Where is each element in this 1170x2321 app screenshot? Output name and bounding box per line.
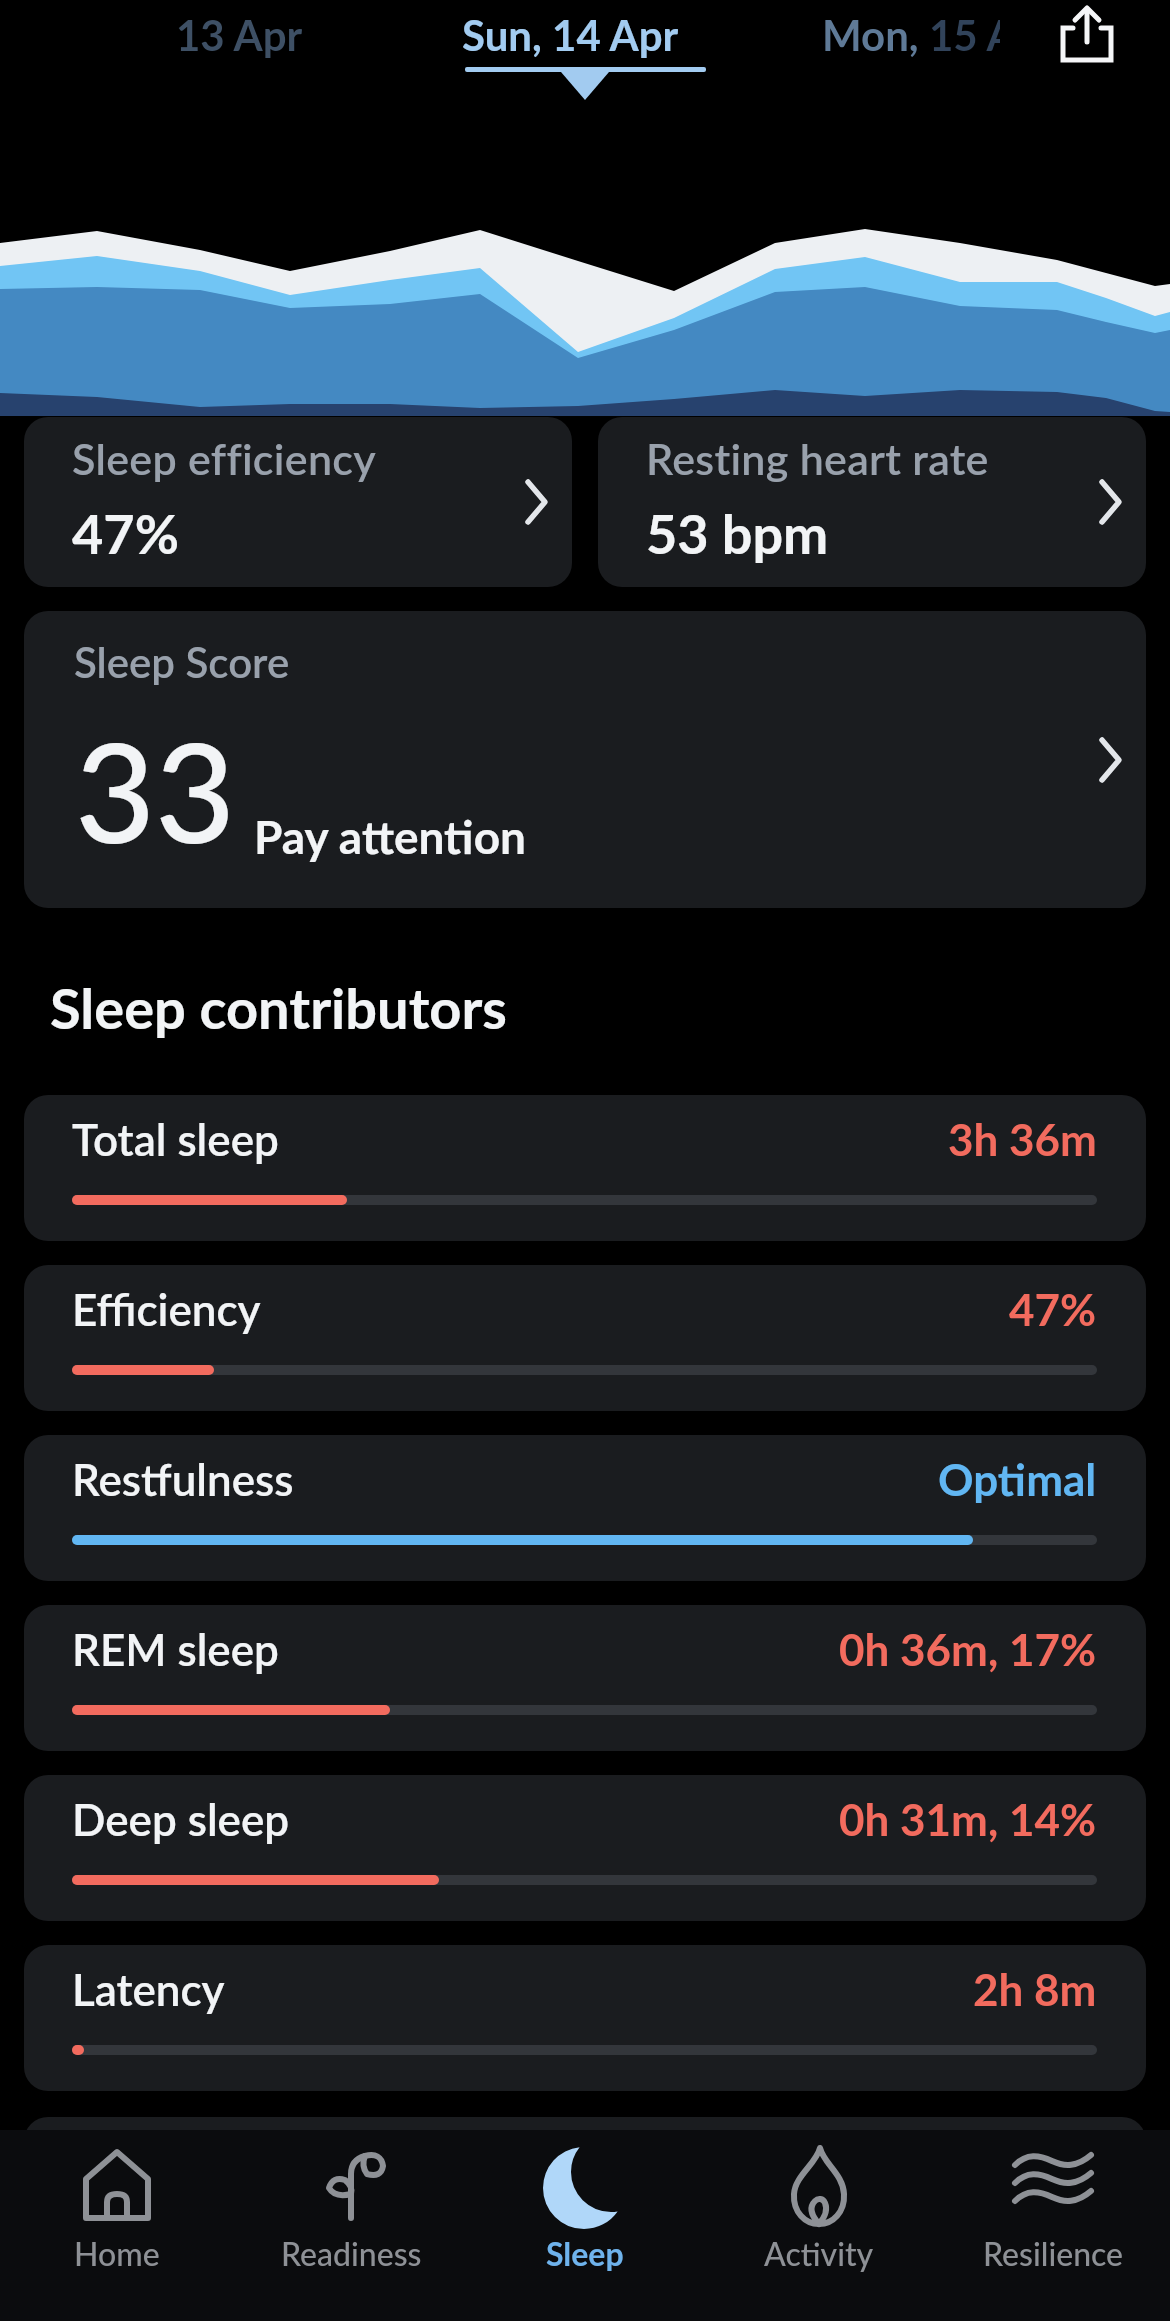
staticText: Sleep Score — [74, 637, 290, 687]
staticText: Mon, 15 Apr — [822, 10, 1000, 60]
staticText: 3h 36m — [948, 1113, 1097, 1166]
button[interactable]: Resting heart rate — [598, 417, 1146, 587]
button[interactable]: Latency — [24, 1945, 1146, 2091]
button[interactable]: Sleep Score — [24, 611, 1146, 908]
button[interactable]: Home — [0, 2130, 234, 2321]
button[interactable] — [1053, 2, 1117, 66]
staticText: 53 bpm — [646, 501, 829, 566]
button[interactable]: Deep sleep — [24, 1775, 1146, 1921]
staticText: Efficiency — [72, 1283, 261, 1336]
button[interactable]: Mon, 15 Apr — [822, 10, 1000, 60]
staticText: Resilience — [983, 2234, 1124, 2272]
staticText: Deep sleep — [72, 1793, 290, 1846]
button[interactable]: REM sleep — [24, 1605, 1146, 1751]
button[interactable]: Resilience — [936, 2130, 1170, 2321]
button[interactable]: Activity — [702, 2130, 936, 2321]
staticText: 33 — [75, 707, 236, 873]
staticText: Home — [74, 2234, 160, 2272]
staticText: REM sleep — [72, 1623, 279, 1676]
staticText: Optimal — [938, 1453, 1097, 1506]
staticText: Sleep efficiency — [72, 433, 376, 485]
button[interactable]: Total sleep — [24, 1095, 1146, 1241]
staticText: Sleep — [546, 2234, 624, 2272]
staticText: Readiness — [281, 2234, 422, 2272]
button[interactable]: Sun, 14 Apr — [450, 10, 690, 60]
staticText: Total sleep — [72, 1113, 279, 1166]
button[interactable]: Sleep efficiency — [24, 417, 572, 587]
staticText: 13 Apr — [176, 10, 303, 60]
staticText: Sun, 14 Apr — [462, 10, 679, 60]
button[interactable]: 13 Apr — [119, 10, 359, 60]
staticText: 0h 36m, 17% — [839, 1623, 1097, 1676]
staticText: Restfulness — [72, 1453, 294, 1506]
staticText: Pay attention — [254, 809, 527, 864]
staticText: 47% — [72, 501, 179, 566]
staticText: Resting heart rate — [646, 433, 989, 485]
staticText: Sleep contributors — [50, 974, 507, 1041]
button[interactable]: Readiness — [234, 2130, 468, 2321]
staticText: Latency — [72, 1963, 225, 2016]
button[interactable]: Efficiency — [24, 1265, 1146, 1411]
staticText: Activity — [764, 2234, 874, 2272]
staticText: 47% — [1009, 1283, 1097, 1336]
button[interactable]: Restfulness — [24, 1435, 1146, 1581]
button[interactable]: Sleep — [468, 2130, 702, 2321]
staticText: 0h 31m, 14% — [839, 1793, 1097, 1846]
staticText: 2h 8m — [973, 1963, 1097, 2016]
